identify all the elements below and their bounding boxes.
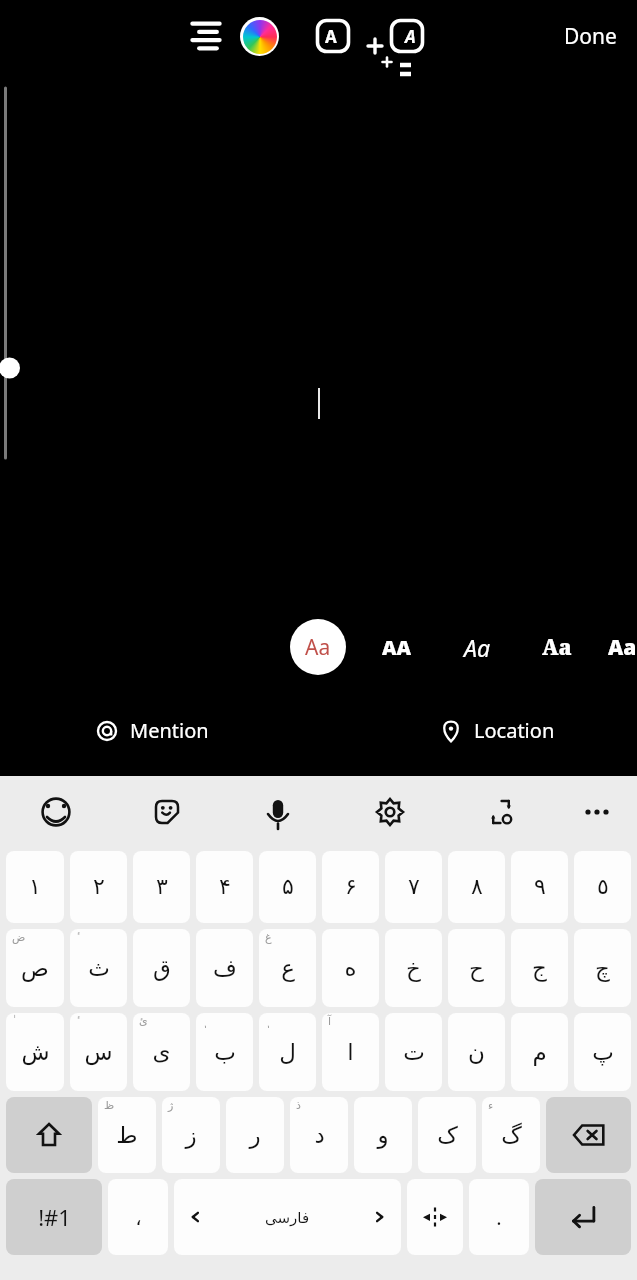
button[interactable]: آ	[322, 1013, 379, 1091]
button[interactable]: Text size slider	[3, 80, 23, 784]
staticText: ع	[281, 955, 295, 982]
button[interactable]: More options	[573, 788, 621, 836]
staticText: و	[377, 1122, 389, 1149]
button[interactable]: ٰ	[6, 1013, 64, 1091]
button[interactable]: ۸	[448, 851, 505, 923]
button[interactable]: Location	[436, 713, 559, 748]
staticText: ح	[469, 955, 484, 982]
button[interactable]: ٖ	[196, 1013, 253, 1091]
staticText: ۶	[345, 874, 357, 900]
staticText: ۳	[156, 874, 168, 900]
button[interactable]: ح	[448, 929, 505, 1007]
staticText: Aa	[305, 633, 331, 662]
staticText: ء	[488, 1099, 494, 1112]
button[interactable]: ۱	[6, 851, 64, 923]
button[interactable]: ظ	[98, 1097, 156, 1173]
button[interactable]: Space, Farsi	[174, 1179, 401, 1255]
button[interactable]: Aa	[607, 621, 637, 673]
button[interactable]: Delete	[546, 1097, 631, 1173]
button[interactable]: ذ	[290, 1097, 348, 1173]
staticText: ۴	[219, 874, 231, 900]
staticText: ض	[12, 931, 26, 944]
button[interactable]: ن	[448, 1013, 505, 1091]
button[interactable]: ۷	[385, 851, 442, 923]
staticText: ک	[437, 1122, 458, 1149]
staticText: ی	[152, 1039, 171, 1066]
staticText: غ	[265, 931, 272, 944]
button[interactable]: ٥	[574, 851, 631, 923]
staticText: ا	[347, 1039, 354, 1066]
button[interactable]: ت	[385, 1013, 442, 1091]
button[interactable]: AA	[371, 621, 423, 673]
button[interactable]: خ	[385, 929, 442, 1007]
button[interactable]: Text highlight	[381, 10, 433, 62]
button[interactable]: Done	[558, 16, 623, 57]
button[interactable]: چ	[574, 929, 631, 1007]
staticText: آ	[328, 1015, 332, 1028]
button[interactable]: Aa	[290, 619, 346, 675]
staticText: ص	[21, 955, 49, 982]
button[interactable]: ک	[418, 1097, 476, 1173]
button[interactable]: پ	[574, 1013, 631, 1091]
staticText: A	[405, 25, 416, 48]
button[interactable]: ژ	[162, 1097, 220, 1173]
staticText: چ	[595, 955, 610, 982]
staticText: Aa	[542, 633, 572, 662]
button[interactable]: ،	[108, 1179, 168, 1255]
button[interactable]: Text color	[233, 10, 285, 62]
button[interactable]: ۴	[196, 851, 253, 923]
button[interactable]: ۳	[133, 851, 190, 923]
staticText: ن	[468, 1039, 485, 1066]
button[interactable]: ۹	[511, 851, 568, 923]
button[interactable]: ق	[133, 929, 190, 1007]
staticText: ب	[214, 1039, 236, 1066]
staticText: ۹	[534, 874, 546, 900]
staticText: ظ	[104, 1099, 115, 1112]
button[interactable]: و	[354, 1097, 412, 1173]
staticText: ژ	[168, 1099, 174, 1112]
staticText: ٥	[597, 874, 609, 900]
button[interactable]: Shift	[6, 1097, 92, 1173]
button[interactable]: ٔ	[70, 929, 127, 1007]
button[interactable]: ه	[322, 929, 379, 1007]
button[interactable]: Settings	[366, 788, 414, 836]
staticText: س	[84, 1039, 113, 1066]
button[interactable]: ج	[511, 929, 568, 1007]
staticText: AA	[382, 634, 412, 661]
button[interactable]: !#1	[6, 1179, 102, 1255]
button[interactable]: Voice input	[254, 788, 302, 836]
button[interactable]: Mention	[92, 713, 213, 748]
button[interactable]: ٖ	[259, 1013, 316, 1091]
button[interactable]: ٔ	[70, 1013, 127, 1091]
staticText: ر	[249, 1122, 261, 1149]
button[interactable]: Text alignment	[180, 10, 232, 62]
staticText: ت	[403, 1039, 425, 1066]
button[interactable]: Emoji	[32, 788, 80, 836]
button[interactable]: ۵	[259, 851, 316, 923]
button[interactable]: ئ	[133, 1013, 190, 1091]
button[interactable]: ۲	[70, 851, 127, 923]
button[interactable]: م	[511, 1013, 568, 1091]
button[interactable]: Move cursor	[407, 1179, 463, 1255]
button[interactable]: ء	[482, 1097, 540, 1173]
button[interactable]: غ	[259, 929, 316, 1007]
button[interactable]: ر	[226, 1097, 284, 1173]
button[interactable]: Aa	[451, 621, 503, 673]
staticText: گ	[501, 1122, 522, 1149]
button[interactable]: ۶	[322, 851, 379, 923]
button[interactable]: ض	[6, 929, 64, 1007]
button[interactable]: Enter	[535, 1179, 631, 1255]
staticText: Aa	[608, 633, 637, 662]
button[interactable]: Aa	[531, 621, 583, 673]
button[interactable]: Stickers	[143, 788, 191, 836]
button[interactable]: Translate	[477, 788, 525, 836]
staticText: ف	[213, 955, 237, 982]
button[interactable]: ف	[196, 929, 253, 1007]
button[interactable]: Text effects	[307, 10, 359, 62]
staticText: ل	[279, 1039, 296, 1066]
staticText: !#1	[38, 1202, 71, 1232]
staticText: Done	[564, 22, 617, 51]
staticText: ۲	[93, 874, 105, 900]
staticText: Mention	[130, 717, 209, 744]
button[interactable]: .	[469, 1179, 529, 1255]
